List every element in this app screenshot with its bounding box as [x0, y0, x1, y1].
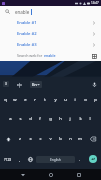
- button[interactable]: a: [5, 109, 15, 129]
- button[interactable]: ?123: [1, 149, 15, 169]
- button[interactable]: enable: [0, 6, 101, 17]
- staticText: 中: [17, 82, 22, 88]
- other: Search the web: [91, 53, 97, 59]
- staticText: d: [29, 116, 32, 122]
- staticText: s: [19, 116, 22, 122]
- button[interactable]: Backspace: [85, 129, 100, 149]
- button[interactable]: English: [36, 156, 75, 163]
- button[interactable]: Search web for: [0, 50, 101, 61]
- staticText: p: [94, 97, 97, 103]
- button[interactable]: Home: [45, 169, 56, 180]
- staticText: u: [64, 97, 67, 103]
- staticText: ,: [19, 157, 21, 162]
- button[interactable]: l: [85, 109, 95, 129]
- button[interactable]: y: [50, 90, 60, 109]
- button[interactable]: Enter: [85, 149, 100, 169]
- staticText: f: [39, 116, 41, 122]
- button[interactable]: En: [30, 81, 42, 88]
- staticText: t: [44, 97, 46, 103]
- staticText: En: [32, 82, 37, 88]
- staticText: y: [54, 97, 57, 103]
- button[interactable]: Chinese input: [16, 81, 23, 88]
- staticText: c: [39, 136, 42, 142]
- staticText: r: [34, 97, 36, 103]
- button[interactable]: p: [90, 90, 100, 109]
- button[interactable]: v: [45, 129, 55, 149]
- button[interactable]: e: [20, 90, 30, 109]
- staticText: g: [49, 116, 52, 122]
- staticText: n: [69, 136, 72, 142]
- button[interactable]: m: [75, 129, 85, 149]
- staticText: 3: [5, 82, 7, 86]
- button[interactable]: s: [15, 109, 25, 129]
- button[interactable]: x: [25, 129, 35, 149]
- button[interactable]: o: [80, 90, 90, 109]
- staticText: Enable #3: [17, 42, 37, 48]
- staticText: x: [29, 136, 32, 142]
- button[interactable]: Clipboard: [3, 81, 9, 87]
- staticText: a: [9, 116, 12, 122]
- button[interactable]: b: [55, 129, 65, 149]
- staticText: i: [74, 97, 76, 103]
- staticText: k: [79, 116, 82, 122]
- button[interactable]: Enable #2: [0, 28, 101, 39]
- staticText: Enable #1: [17, 20, 37, 26]
- staticText: j: [69, 116, 71, 122]
- staticText: z: [19, 136, 21, 142]
- staticText: o: [84, 97, 87, 103]
- staticText: .: [79, 157, 81, 162]
- button[interactable]: Voice input: [90, 80, 98, 88]
- button[interactable]: Recent apps: [73, 169, 84, 180]
- staticText: enable: [44, 53, 56, 58]
- button[interactable]: i: [70, 90, 80, 109]
- button[interactable]: Enable #1: [0, 17, 101, 28]
- button[interactable]: t: [40, 90, 50, 109]
- button[interactable]: u: [60, 90, 70, 109]
- button[interactable]: n: [65, 129, 75, 149]
- button[interactable]: Shift: [1, 129, 15, 149]
- staticText: l: [89, 116, 91, 122]
- staticText: v: [49, 136, 52, 142]
- button[interactable]: d: [25, 109, 35, 129]
- staticText: h: [59, 116, 62, 122]
- staticText: e: [24, 97, 27, 103]
- button[interactable]: Enable #3: [0, 39, 101, 50]
- button[interactable]: h: [55, 109, 65, 129]
- button[interactable]: Change language: [25, 149, 36, 169]
- button[interactable]: r: [30, 90, 40, 109]
- button[interactable]: k: [75, 109, 85, 129]
- button[interactable]: z: [15, 129, 25, 149]
- button[interactable]: Back: [17, 169, 28, 180]
- staticText: b: [59, 136, 62, 142]
- staticText: m: [78, 136, 82, 142]
- staticText: English: [50, 158, 61, 162]
- button[interactable]: j: [65, 109, 75, 129]
- staticText: Enable #2: [17, 31, 37, 37]
- staticText: q: [4, 97, 7, 103]
- button[interactable]: .: [75, 149, 85, 169]
- staticText: enable: [15, 9, 30, 15]
- staticText: Search web for: [17, 53, 44, 58]
- button[interactable]: f: [35, 109, 45, 129]
- button[interactable]: c: [35, 129, 45, 149]
- staticText: 14:47: [91, 1, 99, 5]
- staticText: ?123: [4, 157, 12, 162]
- staticText: w: [13, 97, 17, 103]
- button[interactable]: q: [1, 90, 10, 109]
- button[interactable]: w: [10, 90, 20, 109]
- button[interactable]: g: [45, 109, 55, 129]
- button[interactable]: ,: [15, 149, 25, 169]
